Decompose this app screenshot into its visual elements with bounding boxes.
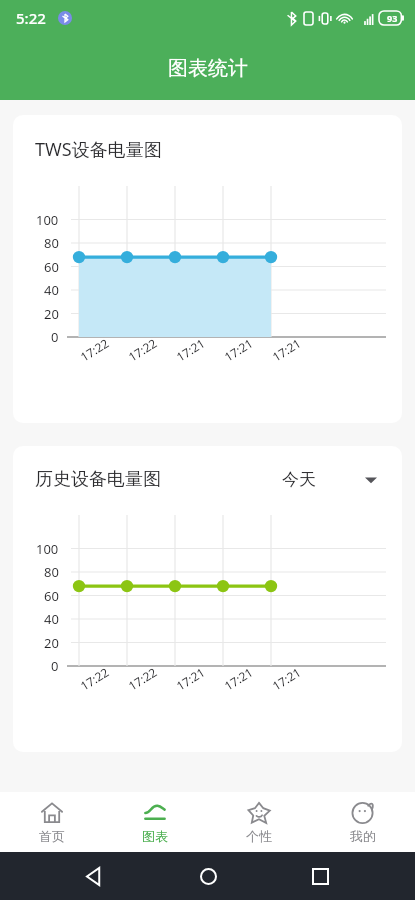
staticText: 历史设备电量图 — [35, 468, 161, 491]
button[interactable]: 个性 — [207, 792, 311, 852]
staticText: 图表统计 — [168, 56, 248, 81]
staticText: 个性 — [246, 828, 272, 844]
button[interactable]: Back — [78, 859, 112, 893]
staticText: 图表 — [142, 828, 168, 844]
button[interactable]: 图表 — [103, 792, 207, 852]
staticText: 今天 — [282, 469, 316, 490]
staticText: 93 — [387, 12, 398, 24]
staticText: TWS设备电量图 — [35, 137, 162, 162]
button[interactable]: 我的 — [311, 792, 415, 852]
button[interactable]: Home — [191, 859, 225, 893]
button[interactable]: Select range — [360, 469, 382, 491]
staticText: 首页 — [39, 828, 65, 844]
button[interactable]: 历史设备电量图 — [13, 446, 402, 752]
staticText: 我的 — [350, 828, 376, 844]
button[interactable]: Recents — [303, 859, 337, 893]
button[interactable]: TWS设备电量图 — [13, 115, 402, 423]
button[interactable]: 首页 — [0, 792, 103, 852]
staticText: 5:22 — [16, 8, 46, 28]
